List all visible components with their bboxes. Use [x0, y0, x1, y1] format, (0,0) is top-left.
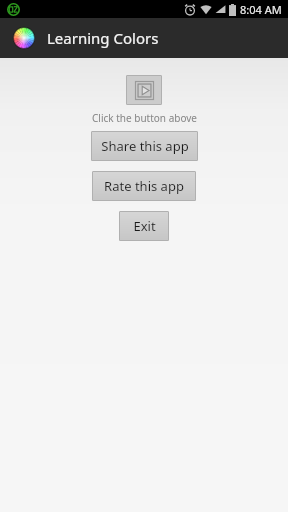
- button[interactable]: Exit: [119, 211, 169, 241]
- button[interactable]: Rate this app: [92, 171, 196, 201]
- staticText: Learning Colors: [47, 28, 159, 48]
- staticText: Click the button above: [92, 111, 197, 125]
- staticText: 8:04 AM: [240, 2, 282, 17]
- button[interactable]: Play: [126, 75, 162, 105]
- button[interactable]: Share this app: [91, 131, 198, 161]
- staticText: Rate this app: [104, 177, 184, 195]
- staticText: Share this app: [101, 137, 189, 155]
- staticText: Exit: [133, 217, 156, 235]
